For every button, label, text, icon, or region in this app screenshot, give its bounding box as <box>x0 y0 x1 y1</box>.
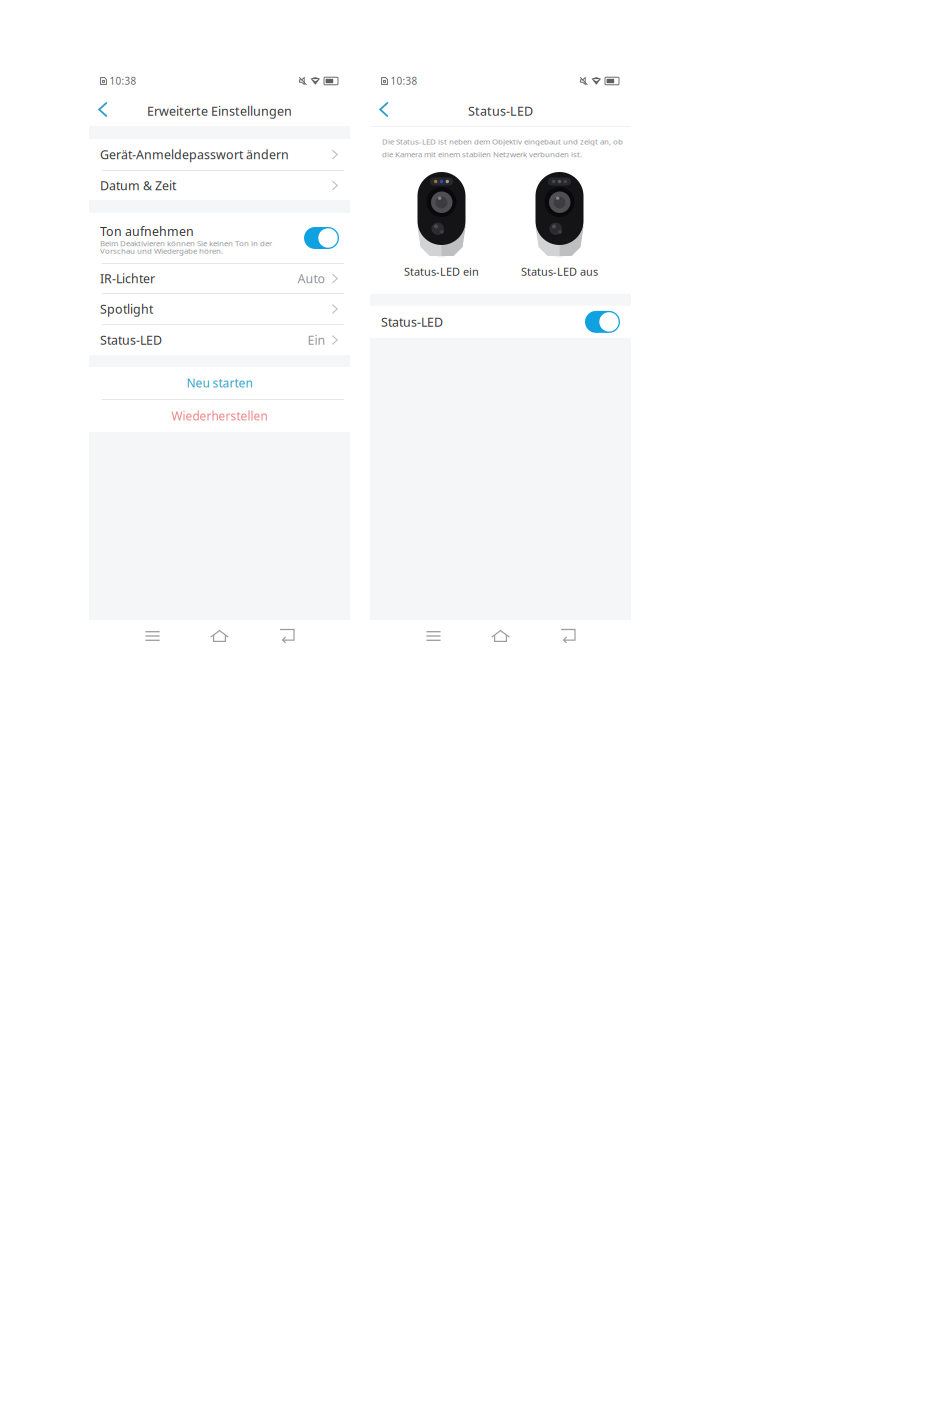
staticText: Ein <box>308 332 326 348</box>
staticText: Wiederherstellen <box>171 408 267 424</box>
button[interactable]: Datum & Zeit <box>89 171 350 200</box>
staticText: IR-Lichter <box>100 270 155 287</box>
staticText: Status-LED aus <box>521 264 598 279</box>
staticText: Beim Deaktivieren können Sie keinen Ton … <box>100 238 272 248</box>
staticText: Die Status-LED ist neben dem Objektiv ei… <box>382 136 623 147</box>
button[interactable]: IR-Lichter <box>89 264 350 293</box>
staticText: Status-LED <box>100 332 162 348</box>
staticText: Spotlight <box>100 301 153 317</box>
button[interactable]: Back <box>89 96 117 126</box>
button[interactable]: Status-LED <box>89 325 350 355</box>
staticText: Status-LED <box>468 102 533 120</box>
staticText: Auto <box>298 270 326 287</box>
button[interactable]: Ton aufnehmen <box>89 213 350 263</box>
staticText: 10:38 <box>110 74 137 88</box>
staticText: Erweiterte Einstellungen <box>147 102 292 120</box>
button[interactable]: Home <box>203 620 236 652</box>
button[interactable]: Neu starten <box>89 367 350 399</box>
staticText: Neu starten <box>186 375 252 391</box>
button[interactable]: Gerät-Anmeldepasswort ändern <box>89 139 350 170</box>
button[interactable]: Back <box>270 620 303 652</box>
staticText: die Kamera mit einem stabilen Netzwerk v… <box>382 149 582 159</box>
staticText: Gerät-Anmeldepasswort ändern <box>100 146 289 163</box>
staticText: Ton aufnehmen <box>100 223 194 240</box>
button[interactable]: Recents <box>136 620 169 652</box>
staticText: Status-LED <box>381 313 443 330</box>
button[interactable]: Home <box>484 620 517 652</box>
button[interactable]: Back <box>551 620 584 652</box>
staticText: Vorschau und Wiedergabe hören. <box>100 245 223 256</box>
staticText: Datum & Zeit <box>100 177 176 194</box>
staticText: Status-LED ein <box>404 264 479 279</box>
button[interactable]: Wiederherstellen <box>89 400 350 432</box>
button[interactable]: Spotlight <box>89 294 350 324</box>
staticText: 10:38 <box>391 74 418 88</box>
button[interactable]: Back <box>370 96 398 126</box>
button[interactable]: Recents <box>417 620 450 652</box>
